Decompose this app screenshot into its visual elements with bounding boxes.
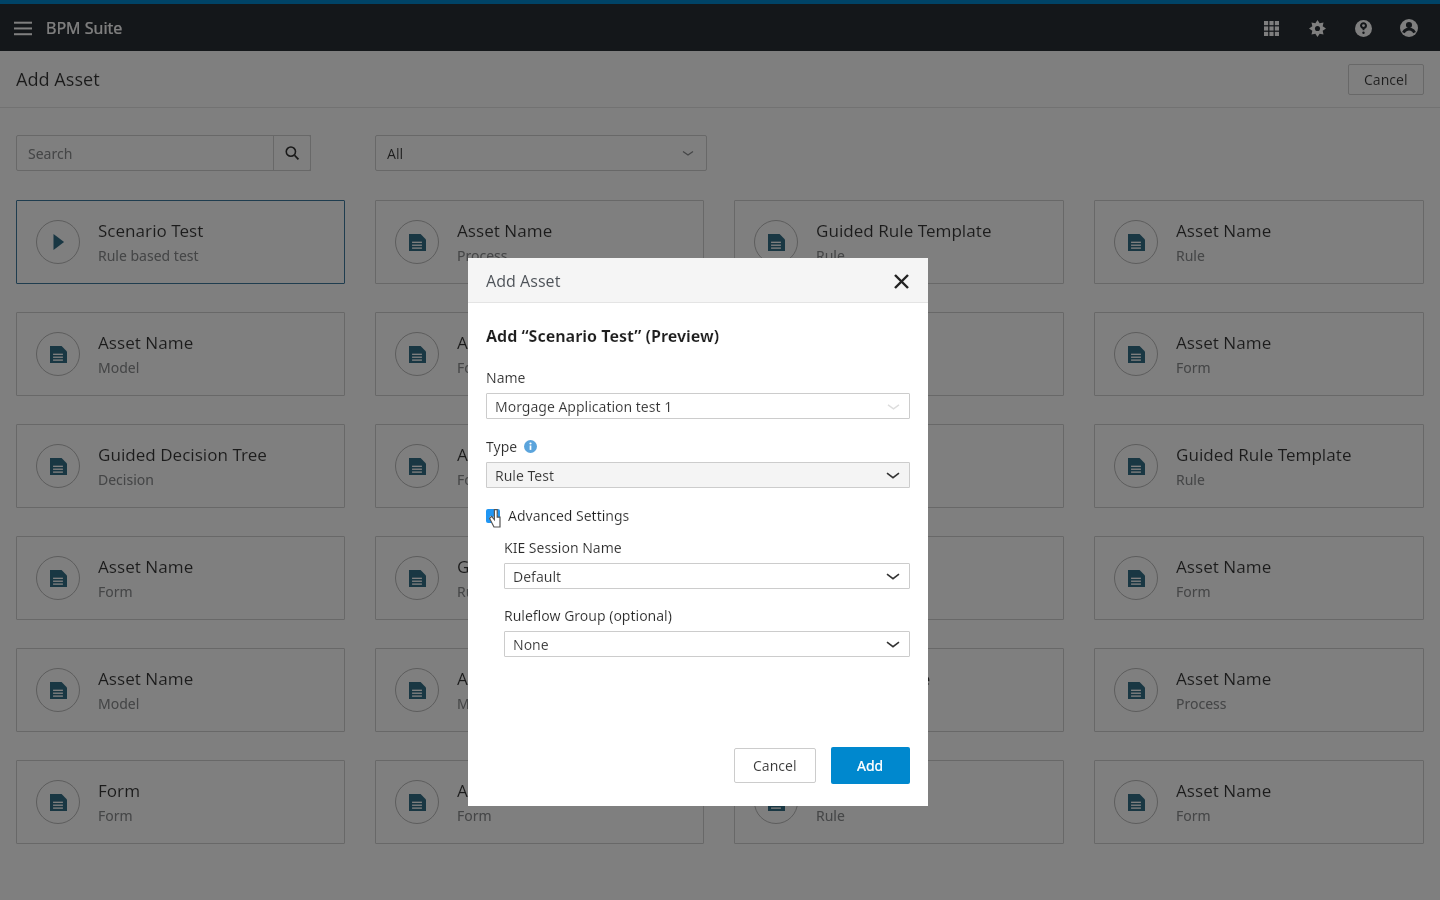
- button[interactable]: Guided Rule Template: [734, 200, 1064, 284]
- button[interactable]: Asset Name: [1094, 760, 1424, 844]
- button[interactable]: Asset Name: [734, 536, 1064, 620]
- staticText: Decision Table: [816, 667, 931, 690]
- staticText: Search: [28, 144, 73, 163]
- staticText: Asset Name: [98, 331, 194, 354]
- button[interactable]: Asset Name: [375, 312, 704, 396]
- staticText: Asset Name: [457, 667, 553, 690]
- button[interactable]: Rule Test: [486, 462, 910, 488]
- staticText: Form: [98, 779, 141, 802]
- staticText: All: [387, 144, 404, 163]
- staticText: Asset Name: [1176, 779, 1272, 802]
- staticText: Rule: [457, 582, 486, 601]
- button[interactable]: Asset Name: [734, 312, 1064, 396]
- button[interactable]: Account: [1386, 5, 1432, 51]
- staticText: KIE Session Name: [504, 538, 622, 557]
- staticText: Model: [98, 358, 140, 377]
- staticText: Asset Name: [1176, 331, 1272, 354]
- button[interactable]: Asset Name: [375, 760, 704, 844]
- staticText: Asset Name: [98, 667, 194, 690]
- staticText: Asset Name: [98, 555, 194, 578]
- staticText: Rule: [816, 470, 845, 489]
- button[interactable]: Asset Name: [1094, 536, 1424, 620]
- staticText: Form: [457, 806, 492, 825]
- button[interactable]: Apps: [1248, 5, 1294, 51]
- button[interactable]: Asset Name: [16, 312, 345, 396]
- button[interactable]: Search: [273, 135, 311, 171]
- button[interactable]: Settings: [1294, 5, 1340, 51]
- staticText: Guided Rule Template: [816, 219, 992, 242]
- staticText: Rule: [816, 806, 845, 825]
- staticText: Asset Name: [457, 779, 553, 802]
- staticText: Model: [98, 694, 140, 713]
- button[interactable]: Guided Rule Template: [1094, 424, 1424, 508]
- button[interactable]: Add: [831, 747, 910, 784]
- button[interactable]: Menu: [0, 5, 46, 51]
- button[interactable]: None: [504, 631, 910, 657]
- staticText: Model: [457, 694, 499, 713]
- staticText: Decision: [98, 470, 154, 489]
- staticText: Asset Name: [816, 555, 912, 578]
- staticText: Form: [98, 806, 133, 825]
- staticText: Guided Rule Template: [1176, 443, 1352, 466]
- staticText: Rule: [1176, 246, 1205, 265]
- staticText: Advanced Settings: [508, 506, 630, 525]
- button[interactable]: Asset Name: [375, 648, 704, 732]
- staticText: Asset Name: [816, 779, 912, 802]
- staticText: Asset Name: [457, 443, 553, 466]
- button[interactable]: Guided Decision Tree: [16, 424, 345, 508]
- staticText: Asset Name: [457, 331, 553, 354]
- staticText: Form: [457, 470, 492, 489]
- staticText: Rule based test: [98, 246, 199, 265]
- button[interactable]: Morgage Application test 1: [486, 393, 910, 419]
- staticText: Default: [513, 567, 562, 586]
- staticText: Asset Name: [457, 219, 553, 242]
- button[interactable]: Asset Name: [1094, 200, 1424, 284]
- staticText: Form: [1176, 806, 1211, 825]
- button[interactable]: Asset Name: [1094, 312, 1424, 396]
- button[interactable]: All: [375, 135, 707, 171]
- staticText: Form: [457, 358, 492, 377]
- button[interactable]: Asset Name: [1094, 648, 1424, 732]
- staticText: Scenario Test: [98, 219, 204, 242]
- button[interactable]: Cancel: [1348, 64, 1424, 95]
- staticText: None: [513, 635, 549, 654]
- staticText: Add Asset: [16, 67, 100, 92]
- staticText: Morgage Application test 1: [495, 397, 673, 416]
- staticText: Type: [486, 437, 518, 456]
- staticText: Ruleflow Group (optional): [504, 606, 672, 625]
- button[interactable]: Form: [16, 760, 345, 844]
- button[interactable]: Scenario Test: [16, 200, 345, 284]
- staticText: Rule: [816, 246, 845, 265]
- staticText: Global Rule: [457, 555, 548, 578]
- button[interactable]: Close: [888, 268, 914, 294]
- button[interactable]: Global Rule: [375, 536, 704, 620]
- button[interactable]: Advanced Settings: [486, 506, 630, 525]
- staticText: Add Asset: [486, 270, 561, 292]
- staticText: Process: [1176, 694, 1227, 713]
- staticText: Guided Decision Tree: [98, 443, 267, 466]
- button[interactable]: Asset Name: [734, 760, 1064, 844]
- staticText: BPM Suite: [46, 17, 123, 39]
- button[interactable]: Asset Name: [734, 424, 1064, 508]
- staticText: Form: [1176, 358, 1211, 377]
- button[interactable]: Default: [504, 563, 910, 589]
- button[interactable]: Cancel: [734, 748, 816, 783]
- staticText: Cancel: [753, 756, 797, 775]
- staticText: Asset Name: [1176, 667, 1272, 690]
- staticText: Form: [1176, 582, 1211, 601]
- button[interactable]: Asset Name: [375, 424, 704, 508]
- button[interactable]: Asset Name: [375, 200, 704, 284]
- staticText: Name: [486, 368, 526, 387]
- staticText: Rule Test: [495, 466, 554, 485]
- staticText: Asset Name: [816, 443, 912, 466]
- button[interactable]: Asset Name: [16, 536, 345, 620]
- staticText: Rule: [816, 582, 845, 601]
- staticText: Cancel: [1364, 70, 1408, 89]
- staticText: Asset Name: [1176, 555, 1272, 578]
- button[interactable]: Asset Name: [16, 648, 345, 732]
- button[interactable]: Decision Table: [734, 648, 1064, 732]
- button[interactable]: Help: [1340, 5, 1386, 51]
